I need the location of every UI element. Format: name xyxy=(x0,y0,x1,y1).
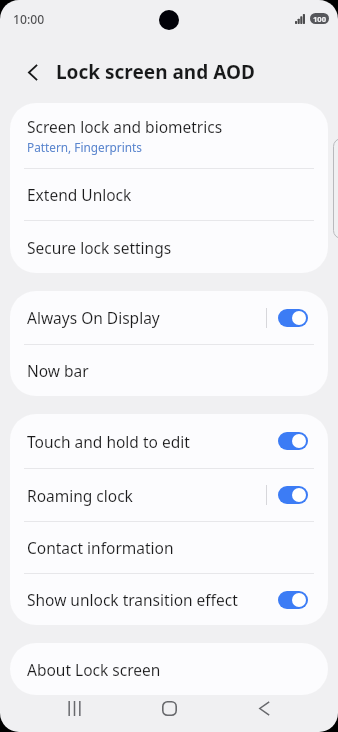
button[interactable]: Roaming clock xyxy=(10,469,328,521)
button[interactable]: Navigate up xyxy=(8,48,57,96)
staticText: Now bar xyxy=(27,360,89,381)
button[interactable]: Recent apps xyxy=(44,695,104,722)
button[interactable]: Extend Unlock xyxy=(10,169,328,220)
button[interactable]: Roaming clock xyxy=(278,486,308,504)
staticText: Contact information xyxy=(27,537,174,558)
button[interactable]: Show unlock transition effect xyxy=(278,591,308,609)
staticText: Show unlock transition effect xyxy=(27,589,238,610)
staticText: 100 xyxy=(313,14,327,24)
button[interactable]: Always On Display xyxy=(278,309,308,327)
button[interactable]: Secure lock settings xyxy=(10,221,328,273)
button[interactable]: Touch and hold to edit xyxy=(278,432,308,450)
button[interactable]: Now bar xyxy=(10,345,328,396)
button[interactable]: Always On Display xyxy=(10,291,328,344)
staticText: Roaming clock xyxy=(27,485,133,506)
button[interactable]: Home xyxy=(139,695,199,722)
staticText: Pattern, Fingerprints xyxy=(27,139,142,155)
staticText: Extend Unlock xyxy=(27,184,132,205)
staticText: 10:00 xyxy=(13,11,45,28)
staticText: Lock screen and AOD xyxy=(56,59,255,85)
staticText: Always On Display xyxy=(27,307,160,328)
button[interactable]: Screen lock and biometrics xyxy=(10,103,328,168)
button[interactable]: About Lock screen xyxy=(10,643,328,695)
staticText: Secure lock settings xyxy=(27,237,172,258)
staticText: Touch and hold to edit xyxy=(27,431,190,452)
staticText: About Lock screen xyxy=(27,659,161,680)
button[interactable]: Touch and hold to edit xyxy=(10,414,328,468)
button[interactable]: Back xyxy=(234,695,294,722)
button[interactable]: Show unlock transition effect xyxy=(10,574,328,625)
staticText: Screen lock and biometrics xyxy=(27,116,223,137)
button[interactable]: Contact information xyxy=(10,522,328,573)
